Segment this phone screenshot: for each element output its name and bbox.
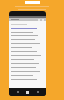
button[interactable]: [11, 65, 44, 69]
button[interactable]: [11, 37, 44, 41]
button[interactable]: [11, 61, 44, 65]
button[interactable]: [11, 57, 44, 61]
button[interactable]: [11, 45, 44, 49]
button[interactable]: [11, 73, 44, 77]
button[interactable]: [11, 49, 44, 53]
button[interactable]: [11, 77, 44, 81]
button[interactable]: [11, 69, 44, 73]
button[interactable]: [11, 53, 44, 57]
button[interactable]: [11, 33, 44, 37]
button[interactable]: [11, 41, 44, 45]
